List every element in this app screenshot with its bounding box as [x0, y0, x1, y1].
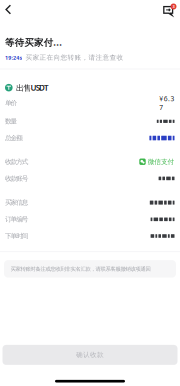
- button[interactable]: Back: [0, 0, 21, 19]
- staticText: 确认收款: [76, 351, 104, 359]
- staticText: 出售USDT: [16, 82, 49, 93]
- staticText: 3: [172, 4, 174, 9]
- button[interactable]: 确认收款: [2, 345, 177, 365]
- staticText: 19:24s: [5, 54, 22, 61]
- staticText: 下单时间: [5, 232, 29, 240]
- staticText: 微信支付: [148, 158, 174, 166]
- staticText: 收款账号: [5, 174, 29, 182]
- staticText: 买家正在向您转账，请注意查收: [25, 53, 123, 62]
- button[interactable]: Messages: [153, 1, 180, 18]
- staticText: 等待买家付款: [5, 36, 62, 47]
- staticText: 收款方式: [5, 158, 29, 166]
- staticText: ¥6.37: [159, 94, 174, 112]
- staticText: 总金额: [5, 134, 23, 142]
- staticText: 买家信息: [5, 198, 29, 207]
- staticText: 单价: [5, 99, 18, 107]
- staticText: 订单编号: [5, 215, 29, 223]
- staticText: 数量: [5, 117, 18, 125]
- staticText: 买家转账时备注或您收到非实名汇款，请联系客服撤销该项通回: [10, 266, 150, 272]
